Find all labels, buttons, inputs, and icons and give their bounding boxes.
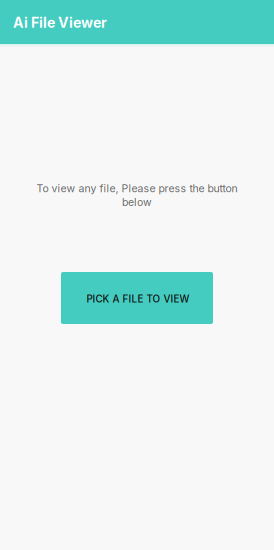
staticText: To view any file, Please press the butto… — [36, 182, 237, 195]
staticText: below — [122, 196, 152, 208]
staticText: PICK A FILE TO VIEW — [86, 293, 189, 305]
button[interactable]: PICK A FILE TO VIEW — [61, 272, 213, 324]
staticText: Ai File Viewer — [13, 14, 107, 31]
